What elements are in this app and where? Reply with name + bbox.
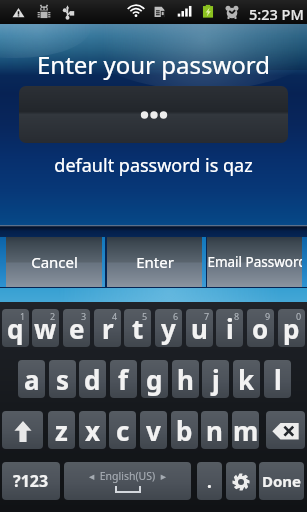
button[interactable]: m [232,411,259,449]
button[interactable]: Shift [2,411,43,449]
staticText: Enter your password [0,48,307,81]
staticText: z [55,413,68,448]
staticText: s [56,362,70,397]
button[interactable]: o [247,309,274,347]
staticText: g [146,362,163,397]
staticText: x [85,413,101,448]
button[interactable]: Email Password [207,237,302,287]
button[interactable]: k [233,360,260,398]
button[interactable]: . [197,462,222,500]
staticText: a [24,362,40,397]
button[interactable]: Space [64,462,191,500]
button[interactable]: l [264,360,291,398]
staticText: t [132,311,144,346]
button[interactable]: w [32,309,59,347]
staticText: j [212,362,220,397]
staticText: l [274,362,282,397]
button[interactable]: p [278,309,305,347]
staticText: u [191,311,208,346]
button[interactable]: j [202,360,229,398]
button[interactable]: b [171,411,198,449]
staticText: w [34,311,57,346]
button[interactable]: n [201,411,228,449]
button[interactable]: d [79,360,106,398]
button[interactable]: Settings [226,462,256,500]
staticText: f [118,362,129,397]
staticText: 5:23 PM [249,4,304,24]
staticText: h [177,362,194,397]
staticText: 2 [50,310,56,322]
staticText: 4 [112,310,118,322]
button[interactable]: Enter [107,237,202,287]
button[interactable]: y [155,309,182,347]
button[interactable]: v [140,411,167,449]
staticText: 6 [173,310,179,322]
button[interactable]: a [18,360,45,398]
staticText: v [146,413,161,448]
staticText: ?123 [13,470,49,492]
button[interactable]: ?123 [2,462,60,500]
staticText: 3 [81,310,87,322]
button[interactable]: s [49,360,76,398]
button[interactable]: i [216,309,243,347]
staticText: Enter [136,252,174,272]
staticText: c [116,413,130,448]
staticText: . [207,470,212,493]
staticText: 5 [142,310,148,322]
staticText: d [84,362,101,397]
staticText: 7 [204,310,210,322]
button[interactable]: g [141,360,168,398]
button[interactable]: Done [259,462,304,500]
staticText: Done [262,471,302,491]
staticText: Email Password [207,253,302,271]
button[interactable]: x [79,411,106,449]
staticText: y [161,311,176,346]
staticText: q [7,311,24,346]
staticText: ◂ English(US) ▸ [89,469,166,483]
staticText: e [69,311,85,346]
button[interactable]: Backspace [266,411,305,449]
button[interactable]: z [48,411,75,449]
button[interactable]: c [109,411,136,449]
button[interactable]: f [110,360,137,398]
button[interactable]: e [63,309,90,347]
button[interactable]: u [186,309,213,347]
staticText: p [283,311,300,346]
staticText: 1 [20,310,26,322]
staticText: 9 [265,310,271,322]
staticText: b [176,413,193,448]
button[interactable]: r [94,309,121,347]
staticText: i [226,311,234,346]
staticText: 8 [234,310,240,322]
staticText: n [206,413,223,448]
staticText: m [233,413,259,448]
staticText: k [238,362,255,397]
button[interactable]: h [172,360,199,398]
button[interactable]: t [124,309,151,347]
button[interactable]: q [2,309,29,347]
button[interactable] [19,86,288,143]
staticText: Cancel [31,252,78,272]
button[interactable]: Cancel [6,237,102,287]
staticText: 0 [296,310,302,322]
staticText: default password is qaz [0,153,307,178]
staticText: r [102,311,114,346]
staticText: o [252,311,269,346]
